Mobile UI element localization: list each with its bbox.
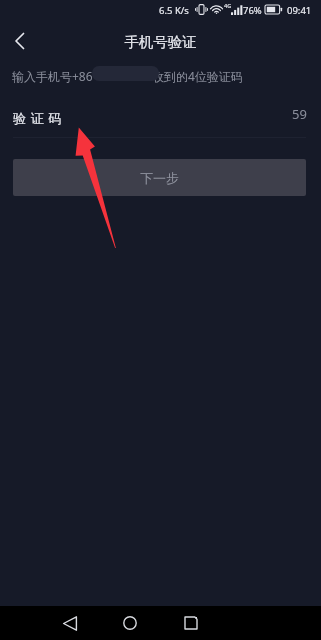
staticText: 收到的4位验证码 (152, 68, 243, 84)
staticText: 59 (292, 105, 307, 123)
staticText: 验 证 码 (13, 109, 63, 127)
staticText: 6.5 K/s (159, 4, 189, 17)
staticText: 手机号验证 (0, 33, 321, 51)
button[interactable]: Recent apps (169, 606, 213, 640)
staticText: 76% (243, 4, 262, 17)
button[interactable]: 验 证 码 (13, 98, 306, 138)
staticText: 输入手机号+86 (12, 68, 93, 84)
staticText: 4G (224, 2, 232, 9)
button[interactable]: 下一步 (13, 159, 306, 196)
staticText: 下一步 (140, 170, 179, 186)
button[interactable]: Back (8, 29, 32, 53)
staticText: 09:41 (287, 4, 312, 17)
button[interactable]: Home (108, 606, 152, 640)
button[interactable]: Back (48, 606, 92, 640)
